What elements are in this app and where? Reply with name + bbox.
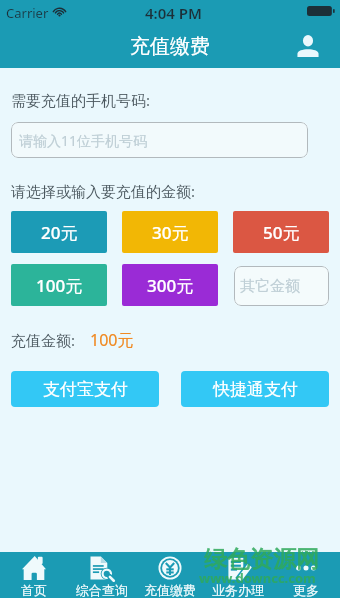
button[interactable]: 其它金额 [234, 266, 329, 306]
button[interactable]: 300元 [122, 264, 218, 306]
button[interactable]: 业务办理 [204, 552, 272, 598]
button[interactable]: 100元 [11, 264, 107, 306]
staticText: 充值缴费 [130, 34, 210, 59]
staticText: 100元 [36, 274, 83, 297]
staticText: 更多 [293, 582, 319, 598]
staticText: Carrier [6, 4, 49, 22]
staticText: 快捷通支付 [213, 379, 298, 400]
staticText: 充值金额: [11, 330, 76, 350]
staticText: 其它金额 [240, 277, 300, 296]
button[interactable]: 快捷通支付 [181, 371, 329, 407]
staticText: 首页 [21, 582, 47, 598]
staticText: 100元 [90, 329, 134, 351]
staticText: 充值缴费 [144, 582, 196, 598]
staticText: 请输入11位手机号码 [19, 131, 148, 150]
button[interactable]: 充值缴费 [136, 552, 204, 598]
button[interactable]: 50元 [233, 211, 329, 253]
staticText: 4:04 PM [145, 3, 202, 23]
staticText: 30元 [152, 221, 189, 244]
button[interactable]: 支付宝支付 [11, 371, 159, 407]
button[interactable]: 首页 [0, 552, 68, 598]
staticText: 300元 [147, 274, 194, 297]
button[interactable]: Account [291, 29, 325, 63]
button[interactable]: 30元 [122, 211, 218, 253]
staticText: 支付宝支付 [43, 379, 128, 400]
staticText: 请选择或输入要充值的金额: [11, 181, 196, 201]
staticText: 综合查询 [76, 582, 128, 598]
staticText: 需要充值的手机号码: [11, 90, 151, 110]
staticText: 20元 [41, 221, 78, 244]
staticText: www.downcc.com [199, 569, 316, 587]
button[interactable]: 更多 [272, 552, 340, 598]
staticText: 绿色资源网 [204, 545, 319, 574]
staticText: 50元 [263, 221, 300, 244]
button[interactable]: 20元 [11, 211, 107, 253]
staticText: 业务办理 [212, 582, 264, 598]
button[interactable]: 请输入11位手机号码 [11, 122, 308, 158]
button[interactable]: 综合查询 [68, 552, 136, 598]
